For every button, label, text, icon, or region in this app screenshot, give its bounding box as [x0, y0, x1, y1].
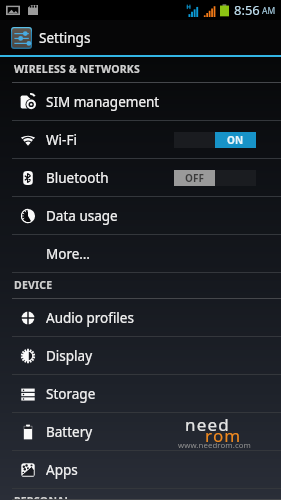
staticText: More… [46, 245, 91, 263]
staticText: Wi-Fi [46, 131, 77, 149]
staticText: WIRELESS & NETWORKS [14, 62, 140, 76]
staticText: ON [227, 133, 244, 147]
button[interactable]: Bluetooth [0, 159, 281, 197]
button[interactable]: ON [174, 132, 256, 148]
button[interactable]: Display [0, 337, 281, 375]
staticText: AM [262, 5, 276, 17]
button[interactable]: Data usage [0, 197, 281, 235]
button[interactable]: Apps [0, 451, 281, 489]
staticText: DEVICE [14, 278, 53, 292]
staticText: need [185, 413, 230, 436]
button[interactable]: Settings app icon [0, 20, 281, 55]
button[interactable]: SIM management [0, 83, 281, 121]
staticText: Settings [39, 29, 91, 47]
staticText: Audio profiles [46, 309, 134, 327]
staticText: Display [46, 347, 93, 365]
staticText: 8:56 [234, 1, 260, 19]
staticText: rom [205, 424, 242, 447]
button[interactable]: Battery [0, 413, 281, 451]
staticText: Storage [46, 385, 96, 403]
staticText: Data usage [46, 207, 118, 225]
staticText: SIM management [46, 93, 160, 111]
staticText: PERSONAL [14, 494, 71, 500]
button[interactable]: Wi-Fi [0, 121, 281, 159]
button[interactable]: Audio profiles [0, 299, 281, 337]
other: Settings app icon [11, 27, 32, 49]
button[interactable]: More… [0, 235, 281, 273]
staticText: Battery [46, 423, 93, 441]
staticText: www.needrom.com [178, 440, 251, 451]
button[interactable]: OFF [174, 170, 256, 186]
staticText: Bluetooth [46, 169, 109, 187]
button[interactable]: Storage [0, 375, 281, 413]
staticText: OFF [185, 171, 204, 185]
staticText: Apps [46, 461, 78, 479]
